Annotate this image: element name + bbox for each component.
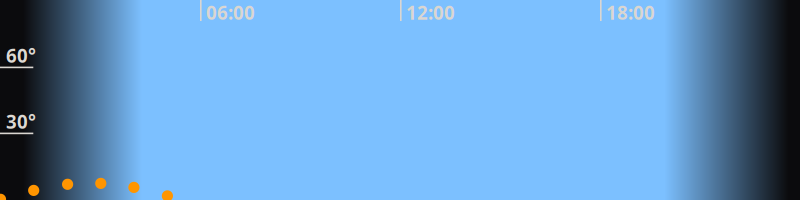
staticText: 18:00	[606, 0, 655, 25]
staticText: 30°	[6, 109, 36, 134]
staticText: 12:00	[406, 0, 455, 25]
staticText: 60°	[6, 43, 36, 68]
staticText: 06:00	[206, 0, 255, 25]
